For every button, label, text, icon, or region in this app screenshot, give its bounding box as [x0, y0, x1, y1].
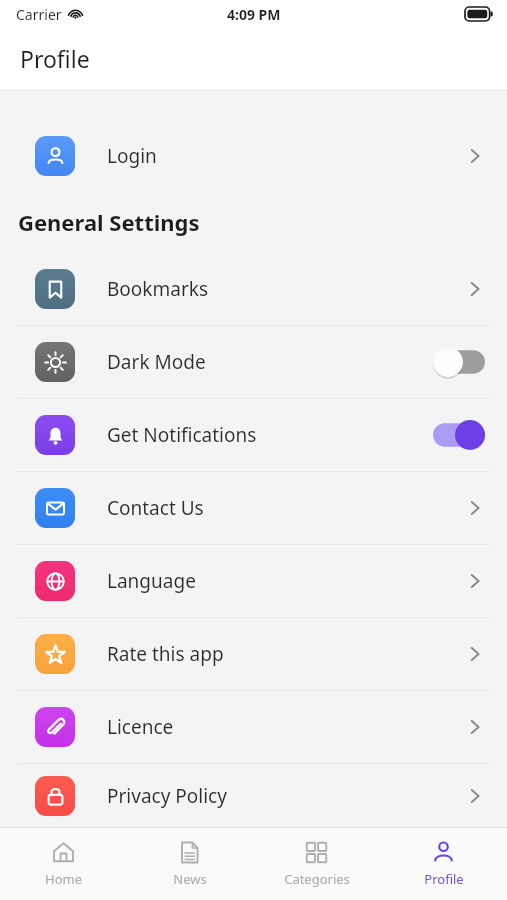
staticText: Privacy Policy [107, 783, 465, 809]
staticText: Home [45, 870, 82, 888]
staticText: Dark Mode [107, 349, 433, 375]
button[interactable]: Licence [0, 691, 507, 763]
staticText: Login [107, 143, 465, 169]
button[interactable]: Toggle off [433, 347, 485, 377]
button[interactable]: Privacy Policy [0, 764, 507, 827]
button[interactable]: Login [0, 120, 507, 192]
staticText: Contact Us [107, 495, 465, 521]
staticText: Categories [284, 870, 350, 888]
staticText: Licence [107, 714, 465, 740]
button[interactable]: Profile [380, 828, 507, 900]
button[interactable]: Language [0, 545, 507, 617]
button[interactable]: Bookmarks [0, 253, 507, 325]
button[interactable]: Toggle on [433, 420, 485, 450]
button[interactable]: Get Notifications [0, 399, 507, 471]
staticText: General Settings [18, 207, 200, 237]
button[interactable]: Dark Mode [0, 326, 507, 398]
button[interactable]: Contact Us [0, 472, 507, 544]
staticText: Bookmarks [107, 276, 465, 302]
button[interactable]: News [126, 828, 253, 900]
staticText: Language [107, 568, 465, 594]
button[interactable]: Home [0, 828, 126, 900]
staticText: Profile [20, 43, 90, 74]
staticText: Carrier [16, 5, 62, 24]
staticText: Rate this app [107, 641, 465, 667]
staticText: Get Notifications [107, 422, 433, 448]
staticText: Profile [424, 870, 464, 888]
button[interactable]: Categories [253, 828, 380, 900]
button[interactable]: Rate this app [0, 618, 507, 690]
staticText: 4:09 PM [227, 5, 281, 24]
staticText: News [173, 870, 207, 888]
